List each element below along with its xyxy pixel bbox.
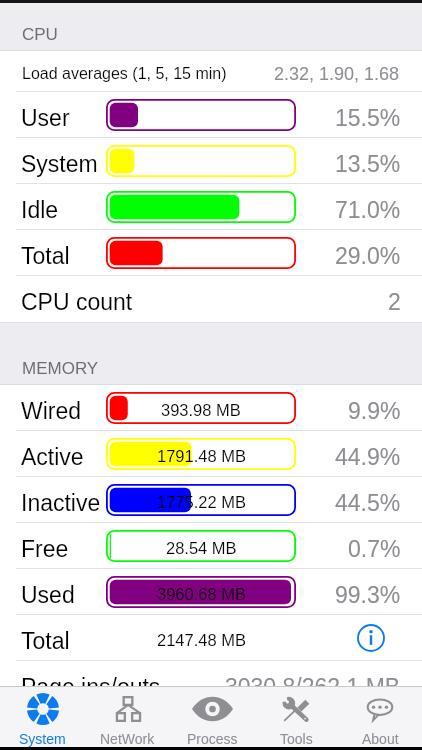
- staticText: System: [21, 151, 98, 177]
- staticText: 1791.48 MB: [157, 447, 246, 465]
- staticText: 28.54 MB: [166, 539, 237, 557]
- button[interactable]: Idle: [0, 184, 422, 230]
- staticText: Load averages (1, 5, 15 min): [22, 65, 227, 83]
- button[interactable]: System: [0, 138, 422, 184]
- button[interactable]: Page ins/outs: [0, 661, 422, 707]
- staticText: 9.9%: [348, 398, 401, 424]
- staticText: 29.0%: [335, 243, 401, 269]
- staticText: Free: [21, 536, 69, 562]
- button[interactable]: Memory information: [357, 624, 385, 652]
- button[interactable]: About: [338, 687, 422, 747]
- staticText: System: [19, 731, 66, 747]
- staticText: 71.0%: [335, 197, 401, 223]
- staticText: 2147.48 MB: [157, 631, 246, 649]
- staticText: 3960.68 MB: [157, 585, 246, 603]
- button[interactable]: Total: [0, 230, 422, 276]
- staticText: Wired: [21, 398, 82, 424]
- staticText: Used: [21, 582, 75, 608]
- staticText: 2.32, 1.90, 1.68: [274, 64, 400, 84]
- staticText: NetWork: [100, 731, 155, 747]
- button[interactable]: Process: [170, 687, 254, 747]
- button[interactable]: System: [0, 687, 85, 747]
- staticText: Page ins/outs: [21, 674, 161, 700]
- staticText: 15.5%: [335, 105, 401, 131]
- staticText: 393.98 MB: [161, 401, 241, 419]
- staticText: 1775.22 MB: [157, 493, 246, 511]
- button[interactable]: Free: [0, 523, 422, 569]
- staticText: MEMORY: [22, 359, 99, 378]
- button[interactable]: Tools: [254, 687, 338, 747]
- staticText: Idle: [21, 197, 59, 223]
- button[interactable]: Used: [0, 569, 422, 615]
- staticText: 3030.8/262.1 MB: [225, 674, 401, 700]
- button[interactable]: Total: [0, 615, 422, 661]
- staticText: CPU: [22, 25, 58, 44]
- staticText: Inactive: [21, 490, 101, 516]
- staticText: Total: [21, 628, 70, 654]
- button[interactable]: NetWork: [85, 687, 170, 747]
- staticText: Process: [187, 731, 238, 747]
- staticText: Active: [21, 444, 84, 470]
- staticText: User: [21, 105, 70, 131]
- staticText: 44.5%: [335, 490, 401, 516]
- staticText: 2: [388, 289, 401, 315]
- button[interactable]: Wired: [0, 385, 422, 431]
- staticText: CPU count: [21, 289, 133, 315]
- staticText: About: [362, 731, 399, 747]
- staticText: 13.5%: [335, 151, 401, 177]
- staticText: 99.3%: [335, 582, 401, 608]
- staticText: 44.9%: [335, 444, 401, 470]
- button[interactable]: Load averages (1, 5, 15 min): [0, 51, 422, 92]
- staticText: 0.7%: [348, 536, 401, 562]
- staticText: Total: [21, 243, 70, 269]
- button[interactable]: Active: [0, 431, 422, 477]
- button[interactable]: User: [0, 92, 422, 138]
- button[interactable]: Inactive: [0, 477, 422, 523]
- button[interactable]: CPU count: [0, 276, 422, 322]
- staticText: Tools: [280, 731, 313, 747]
